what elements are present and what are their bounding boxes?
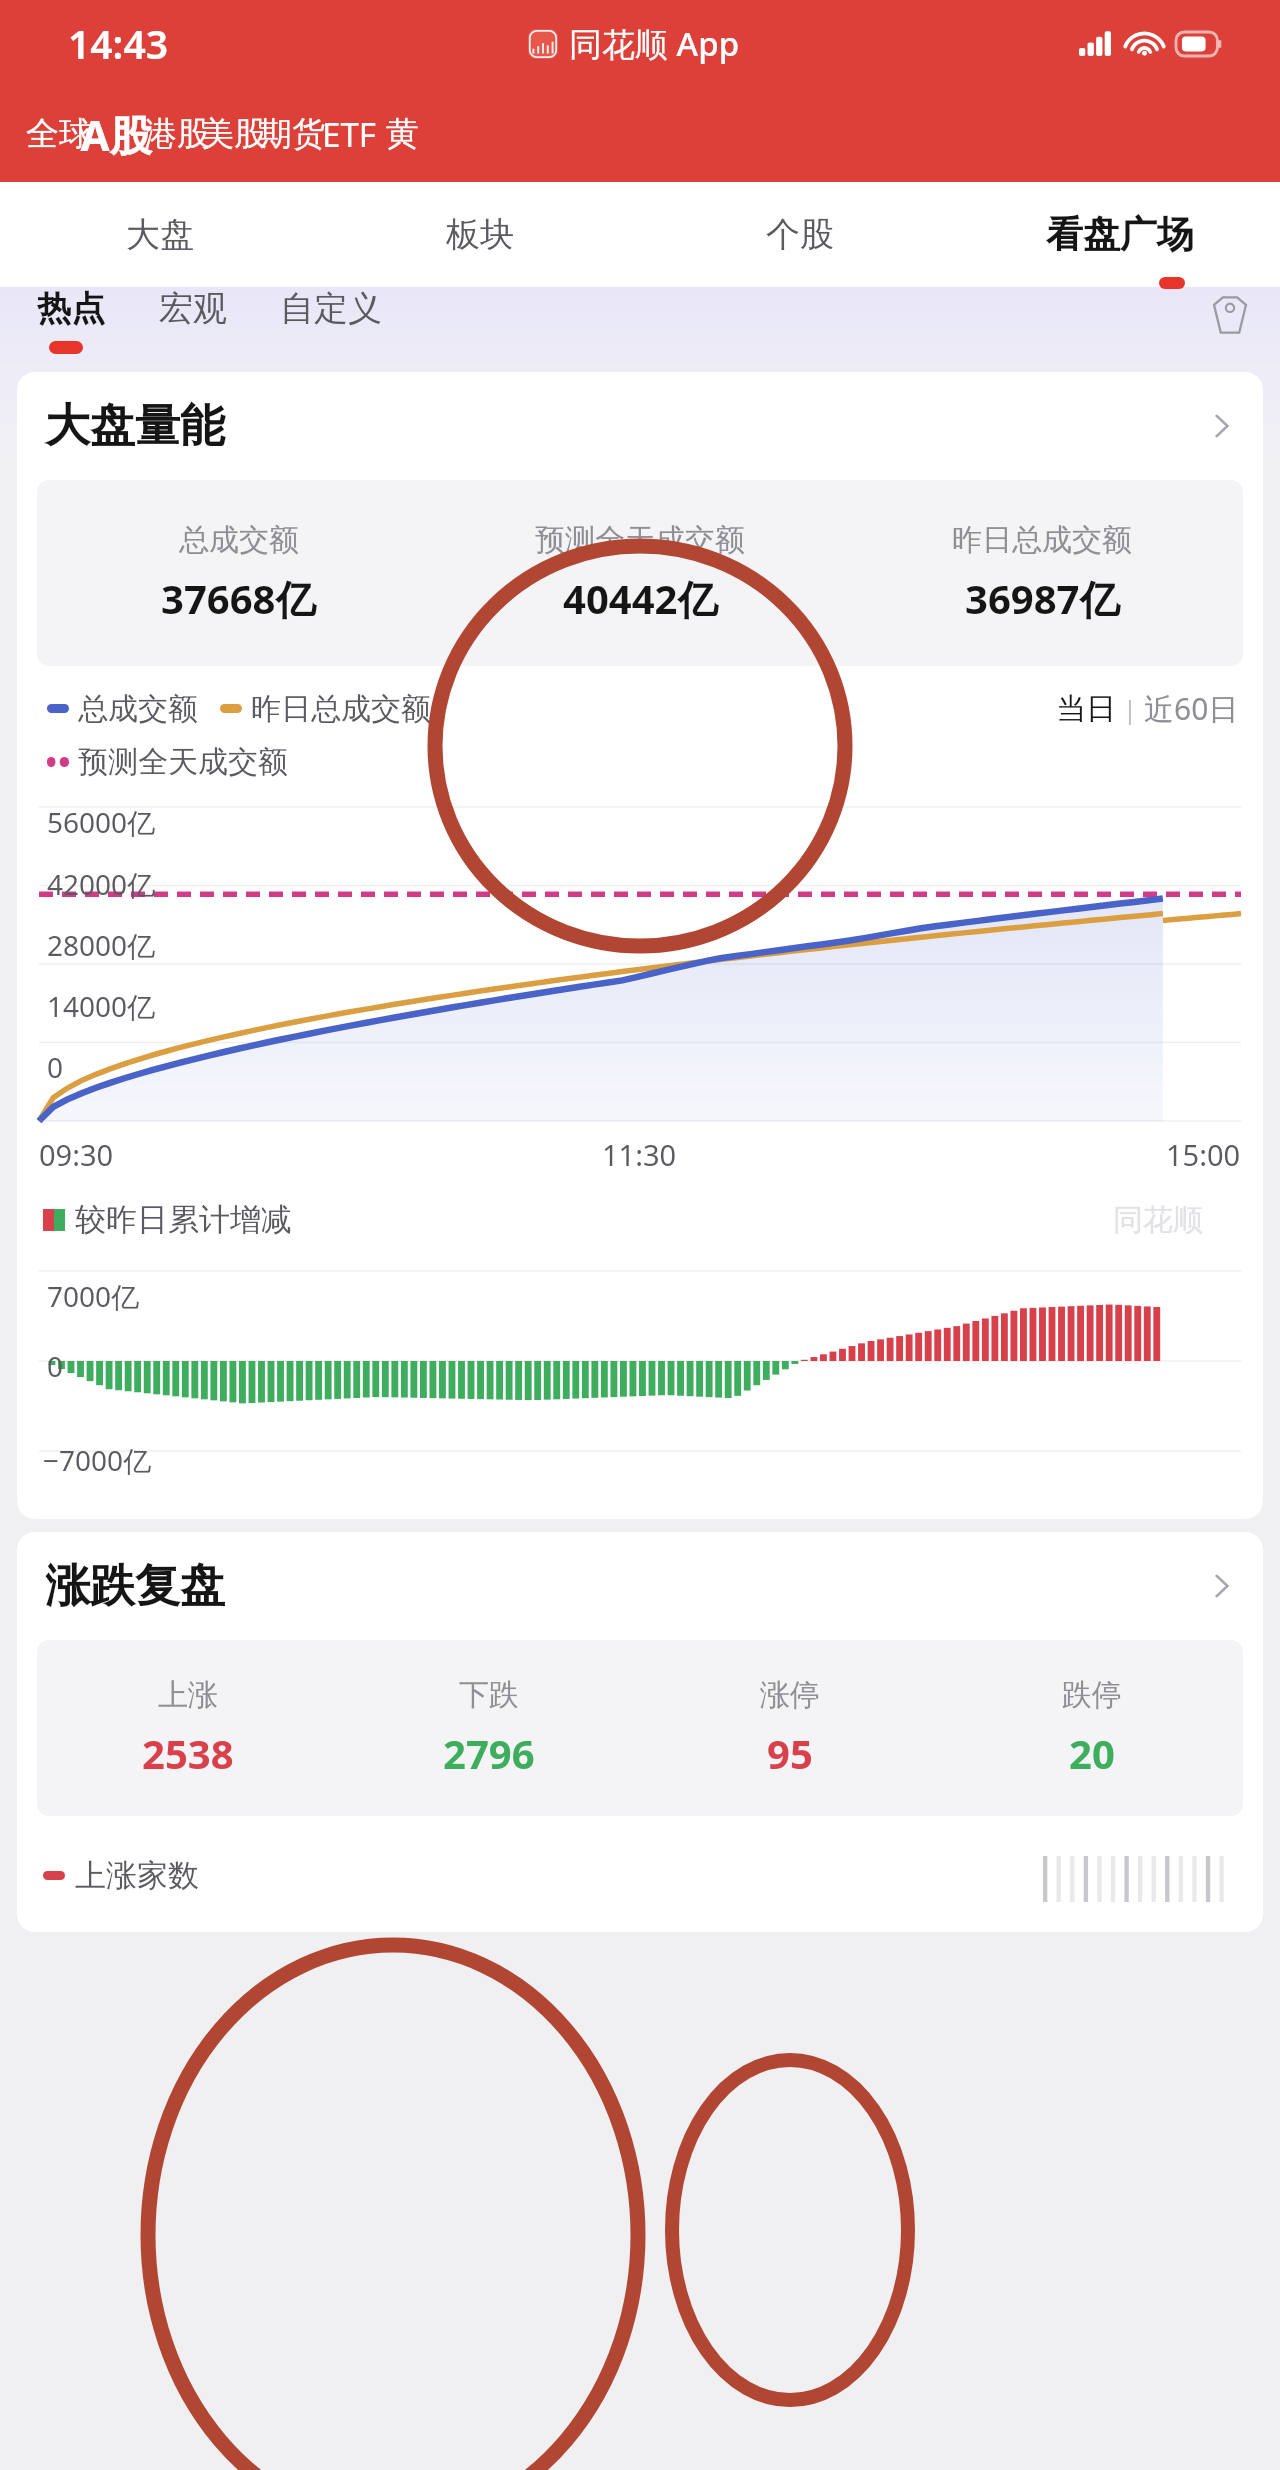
staticText: 42000亿 — [47, 865, 156, 903]
other: 更多 — [1205, 409, 1239, 443]
staticText: 同花顺 App — [569, 21, 740, 66]
staticText: 预测全天成交额 — [535, 521, 745, 559]
staticText: 热点 — [37, 287, 105, 330]
staticText: 7000亿 — [47, 1277, 140, 1315]
staticText: ETF — [322, 112, 376, 157]
button[interactable]: 热点 — [28, 287, 114, 357]
staticText: 同花顺 — [1113, 1201, 1203, 1239]
staticText: 宏观 — [159, 287, 227, 330]
staticText: 20 — [1069, 1726, 1115, 1780]
staticText: 港股 — [144, 113, 210, 155]
button[interactable]: 昨日总成交额 — [952, 517, 1132, 630]
staticText: 上涨 — [158, 1676, 218, 1714]
staticText: 当日 — [1056, 690, 1116, 728]
staticText: 昨日总成交额 — [251, 690, 431, 728]
staticText: 期货 — [259, 113, 325, 155]
staticText: 14000亿 — [47, 987, 156, 1025]
button[interactable]: 跌停 — [1062, 1672, 1122, 1784]
staticText: 总成交额 — [179, 521, 299, 559]
staticText: 95 — [767, 1726, 813, 1780]
button[interactable]: 总成交额 — [161, 517, 316, 630]
staticText: 预测全天成交额 — [78, 743, 288, 781]
staticText: 0 — [47, 1048, 64, 1086]
staticText: 2538 — [142, 1726, 234, 1780]
button[interactable]: 设置 — [1202, 287, 1258, 343]
staticText: 看盘广场 — [1046, 211, 1194, 258]
button[interactable]: 下跌 — [443, 1672, 535, 1784]
staticText: 涨停 — [760, 1676, 820, 1714]
staticText: 昨日总成交额 — [952, 521, 1132, 559]
staticText: −7000亿 — [43, 1441, 152, 1479]
button[interactable]: 期货 — [202, 86, 381, 182]
button[interactable]: 港股 — [87, 86, 266, 182]
button[interactable]: 涨停 — [760, 1672, 820, 1784]
staticText: 28000亿 — [47, 926, 156, 964]
staticText: 美股 — [201, 113, 267, 155]
button[interactable]: 上涨 — [142, 1672, 234, 1784]
staticText: 涨跌复盘 — [45, 1558, 225, 1615]
staticText: 14:43 — [68, 17, 168, 70]
button[interactable]: A股 — [26, 86, 205, 182]
button[interactable]: 当日 — [1056, 688, 1239, 729]
staticText: | — [1116, 691, 1144, 726]
staticText: 全球 — [26, 113, 92, 155]
staticText: 黄 — [386, 113, 419, 155]
staticText: 跌停 — [1062, 1676, 1122, 1714]
staticText: 09:30 — [39, 1135, 114, 1174]
other: 更多 — [1205, 1569, 1239, 1603]
staticText: 较昨日累计增减 — [75, 1200, 292, 1239]
staticText: 板块 — [446, 213, 514, 256]
staticText: A股 — [80, 106, 152, 163]
staticText: 近60日 — [1144, 688, 1239, 729]
button[interactable]: 个股 — [640, 182, 960, 287]
button[interactable]: 宏观 — [150, 287, 236, 357]
button[interactable]: 看盘广场 — [960, 182, 1280, 287]
staticText: 自定义 — [280, 287, 382, 330]
button[interactable]: 黄 — [313, 86, 492, 182]
staticText: 56000亿 — [47, 803, 156, 841]
staticText: 15:00 — [1166, 1135, 1241, 1174]
staticText: 总成交额 — [78, 690, 198, 728]
staticText: 大盘量能 — [45, 398, 225, 455]
button[interactable]: 大盘 — [0, 182, 320, 287]
button[interactable]: 自定义 — [272, 287, 390, 357]
button[interactable]: 预测全天成交额 — [535, 517, 745, 630]
staticText: 11:30 — [602, 1135, 677, 1174]
button[interactable]: 大盘量能 — [17, 372, 1263, 480]
button[interactable]: ETF — [259, 86, 438, 182]
button[interactable]: 涨跌复盘 — [17, 1532, 1263, 1640]
staticText: 2796 — [443, 1726, 535, 1780]
button[interactable]: 全球 — [0, 86, 148, 182]
staticText: 40442亿 — [563, 571, 718, 626]
staticText: 个股 — [766, 213, 834, 256]
staticText: 大盘 — [126, 213, 194, 256]
staticText: 0 — [47, 1347, 64, 1385]
button[interactable]: 板块 — [320, 182, 640, 287]
button[interactable]: 美股 — [144, 86, 323, 182]
staticText: 下跌 — [459, 1676, 519, 1714]
staticText: 上涨家数 — [75, 1856, 199, 1895]
staticText: 37668亿 — [161, 571, 316, 626]
staticText: 36987亿 — [965, 571, 1120, 626]
